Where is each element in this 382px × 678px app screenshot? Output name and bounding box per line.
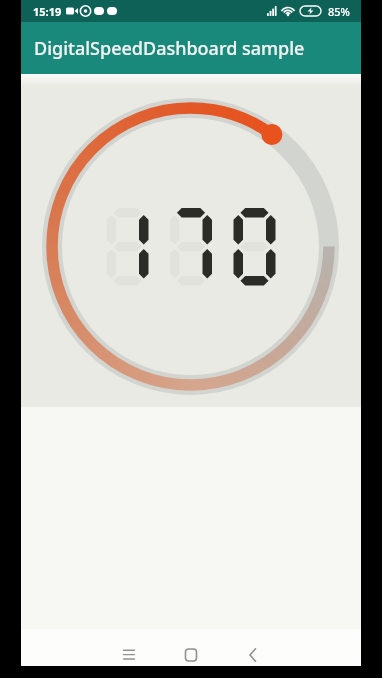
button[interactable] [21,86,361,407]
button[interactable] [117,643,141,666]
staticText: 15:19 [33,4,62,19]
button[interactable] [179,643,203,666]
button[interactable] [241,643,265,666]
button[interactable]: DigitalSpeedDashboard sample [21,22,361,74]
staticText: 85% [328,4,350,19]
staticText: DigitalSpeedDashboard sample [34,36,305,61]
